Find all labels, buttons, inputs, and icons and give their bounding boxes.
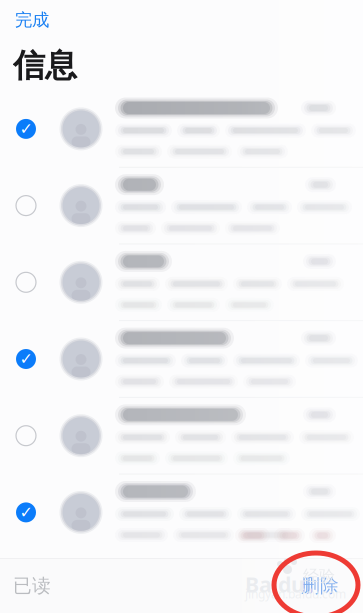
- button[interactable]: ✓: [0, 91, 363, 167]
- button[interactable]: 删除: [287, 560, 363, 611]
- button[interactable]: ✓: [0, 321, 363, 397]
- button[interactable]: ✓: [0, 474, 363, 550]
- staticText: ✓: [19, 503, 32, 521]
- staticText: jingyan.baidu.com: [245, 586, 346, 602]
- staticText: 信息: [13, 46, 77, 85]
- staticText: ✓: [19, 350, 32, 368]
- staticText: 完成: [15, 9, 49, 31]
- staticText: 删除: [301, 574, 339, 597]
- button[interactable]: 已读: [0, 560, 65, 611]
- button[interactable]: [0, 398, 363, 474]
- staticText: Baidu: [245, 570, 305, 598]
- button[interactable]: [0, 244, 363, 320]
- button[interactable]: [0, 168, 363, 243]
- button[interactable]: 完成: [0, 2, 61, 38]
- staticText: 经验: [303, 566, 335, 586]
- staticText: ✓: [19, 120, 32, 138]
- staticText: 已读: [13, 574, 51, 597]
